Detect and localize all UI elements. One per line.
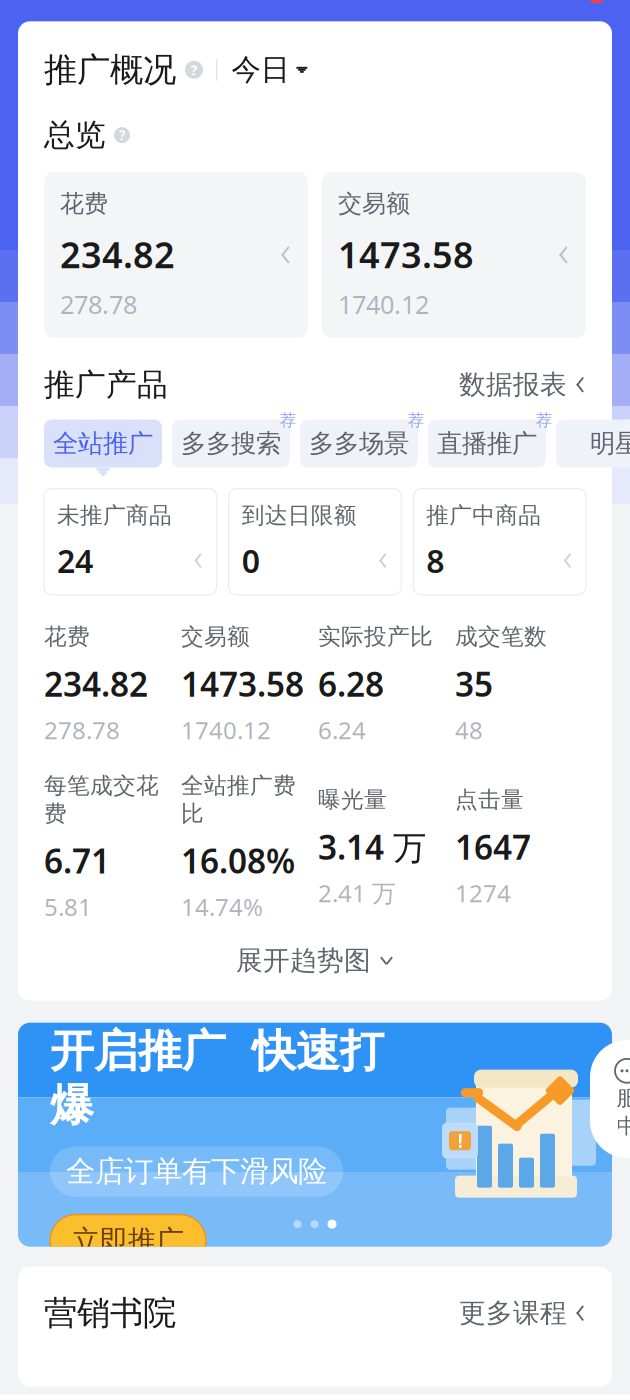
staticText: 6.24: [318, 714, 366, 746]
button[interactable]: 开启推广 快速打爆: [18, 1023, 612, 1247]
staticText: 1473.58: [181, 662, 304, 706]
staticText: 14.74%: [181, 891, 263, 923]
staticText: 1647: [455, 825, 531, 869]
staticText: ?: [190, 60, 197, 80]
staticText: 花费: [44, 623, 90, 651]
staticText: 推广中商品: [426, 501, 541, 529]
staticText: 更多课程: [459, 1297, 567, 1330]
staticText: 成交笔数: [455, 623, 547, 651]
staticText: 立即推广: [72, 1223, 184, 1258]
staticText: 1740.12: [181, 714, 271, 746]
staticText: 花费: [60, 189, 108, 218]
button[interactable]: 全站推广: [44, 419, 162, 476]
button[interactable]: 消息: [536, 0, 612, 4]
staticText: 多多场景: [309, 428, 409, 459]
button[interactable]: 服务中心: [590, 1040, 630, 1158]
staticText: 5.81: [44, 891, 92, 923]
staticText: 278.78: [44, 714, 120, 746]
staticText: 全站推广费比: [181, 772, 296, 828]
staticText: 全站推广: [53, 428, 153, 459]
staticText: 多多搜索: [181, 428, 281, 459]
button[interactable]: 更多课程: [459, 1297, 586, 1330]
staticText: !: [457, 1128, 462, 1153]
staticText: 24: [57, 539, 93, 582]
staticText: 0: [242, 539, 260, 582]
button[interactable]: 展开趋势图: [18, 939, 612, 983]
staticText: 推广概况: [44, 49, 176, 90]
staticText: 234.82: [44, 662, 148, 706]
button[interactable]: 交易额: [322, 172, 586, 338]
staticText: 2.41 万: [318, 877, 396, 909]
staticText: 278.78: [60, 287, 137, 321]
staticText: 未推广商品: [57, 501, 172, 529]
staticText: 1274: [455, 877, 511, 909]
staticText: 3.14 万: [318, 825, 426, 869]
staticText: 146: [591, 0, 602, 2]
staticText: 中: [616, 1113, 630, 1139]
staticText: 荐: [408, 410, 424, 430]
staticText: 今日: [231, 52, 289, 88]
button[interactable]: 到达日限额: [229, 488, 401, 595]
staticText: 推广产品: [44, 366, 168, 404]
staticText: 6.71: [44, 838, 110, 883]
button[interactable]: 明星: [556, 419, 630, 476]
staticText: 服: [616, 1085, 630, 1111]
staticText: 荐: [280, 410, 296, 430]
staticText: 直播推广: [437, 428, 537, 459]
staticText: 6.28: [318, 662, 384, 706]
staticText: 数据报表: [459, 368, 567, 401]
button[interactable]: 推广中商品: [413, 488, 586, 595]
staticText: 每笔成交花费: [44, 772, 159, 828]
staticText: 16.08%: [181, 838, 295, 883]
staticText: 交易额: [338, 189, 410, 218]
button[interactable]: 花费: [44, 172, 308, 338]
staticText: 荐: [536, 410, 552, 430]
button[interactable]: 未推广商品: [44, 488, 217, 595]
button[interactable]: 今日: [231, 52, 307, 88]
staticText: ?: [119, 126, 125, 144]
button[interactable]: 数据报表: [459, 368, 586, 401]
staticText: 35: [455, 662, 493, 706]
staticText: 1740.12: [338, 287, 429, 321]
staticText: 开启推广 快速打爆: [50, 1024, 384, 1132]
staticText: 营销书院: [44, 1293, 176, 1334]
button[interactable]: 直播推广: [428, 419, 546, 476]
button[interactable]: 多多场景: [300, 419, 418, 476]
staticText: 总览: [44, 116, 106, 154]
staticText: 交易额: [181, 623, 250, 651]
staticText: 234.82: [60, 230, 175, 278]
staticText: 展开趋势图: [236, 944, 371, 977]
staticText: 到达日限额: [242, 501, 357, 529]
staticText: 8: [426, 539, 444, 582]
staticText: 48: [455, 714, 483, 746]
staticText: 曝光量: [318, 786, 387, 814]
staticText: 1473.58: [338, 230, 474, 278]
button[interactable]: 多多搜索: [172, 419, 290, 476]
staticText: 实际投产比: [318, 623, 433, 651]
staticText: 明星: [590, 428, 630, 459]
staticText: 点击量: [455, 786, 524, 814]
staticText: 全店订单有下滑风险: [66, 1153, 327, 1189]
